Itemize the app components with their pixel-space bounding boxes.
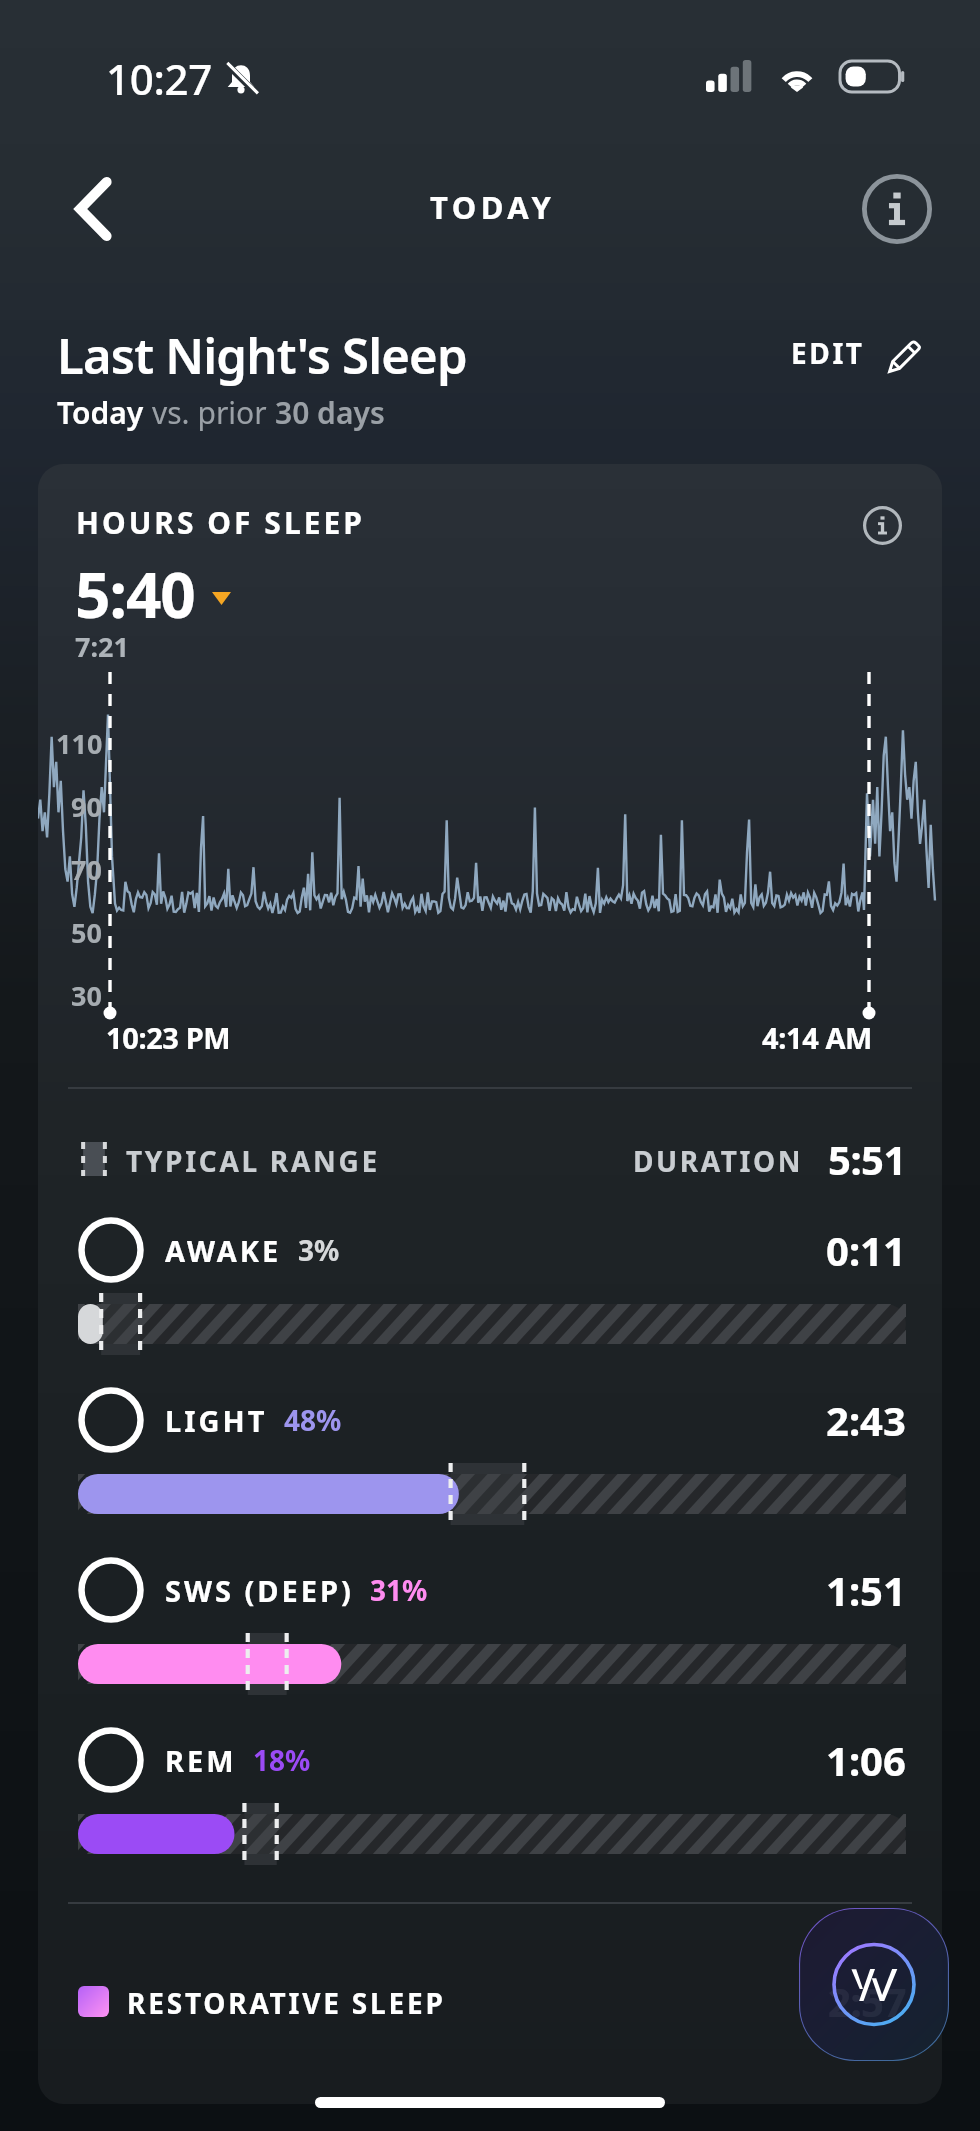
staticText: 110 <box>56 725 103 762</box>
staticText: 90 <box>71 788 102 825</box>
staticText: LIGHT <box>165 1401 268 1440</box>
button[interactable]: Info <box>862 505 902 545</box>
staticText: TODAY <box>430 186 556 228</box>
staticText: 31% <box>370 1571 428 1609</box>
staticText: TYPICAL RANGE <box>126 1142 380 1180</box>
staticText: 2:43 <box>826 1393 906 1447</box>
staticText: 1:51 <box>826 1563 906 1617</box>
staticText: AWAKE <box>165 1231 282 1270</box>
button[interactable]: Back <box>38 154 148 264</box>
button[interactable]: Info <box>862 174 932 244</box>
staticText: 70 <box>71 851 102 888</box>
staticText: REM <box>165 1741 237 1780</box>
button[interactable]: WHOOP Coach <box>799 1908 949 2061</box>
staticText: 50 <box>71 914 102 951</box>
staticText: 3% <box>298 1231 340 1269</box>
staticText: RESTORATIVE SLEEP <box>127 1984 446 2022</box>
staticText: 2:57 <box>828 1974 906 2028</box>
staticText: vs. prior <box>152 392 275 433</box>
staticText: DURATION <box>633 1142 804 1180</box>
staticText: 30 days <box>275 392 385 433</box>
staticText: 7:21 <box>75 628 129 665</box>
staticText: 18% <box>253 1741 311 1779</box>
staticText: 10:23 PM <box>106 1018 231 1057</box>
staticText: 48% <box>284 1401 342 1439</box>
staticText: Last Night's Sleep <box>57 322 467 389</box>
staticText: 10:27 <box>106 50 213 107</box>
staticText: 30 <box>71 977 102 1014</box>
staticText: EDIT <box>791 334 865 372</box>
staticText: 5:40 <box>75 552 195 636</box>
button[interactable]: EDIT <box>791 330 931 376</box>
staticText: SWS (DEEP) <box>165 1571 354 1610</box>
staticText: 1:06 <box>826 1733 906 1787</box>
staticText: 5:51 <box>828 1132 906 1186</box>
staticText: HOURS OF SLEEP <box>76 502 365 543</box>
staticText: 4:14 AM <box>762 1018 873 1057</box>
staticText: Today <box>57 392 152 433</box>
staticText: 0:11 <box>826 1223 906 1277</box>
